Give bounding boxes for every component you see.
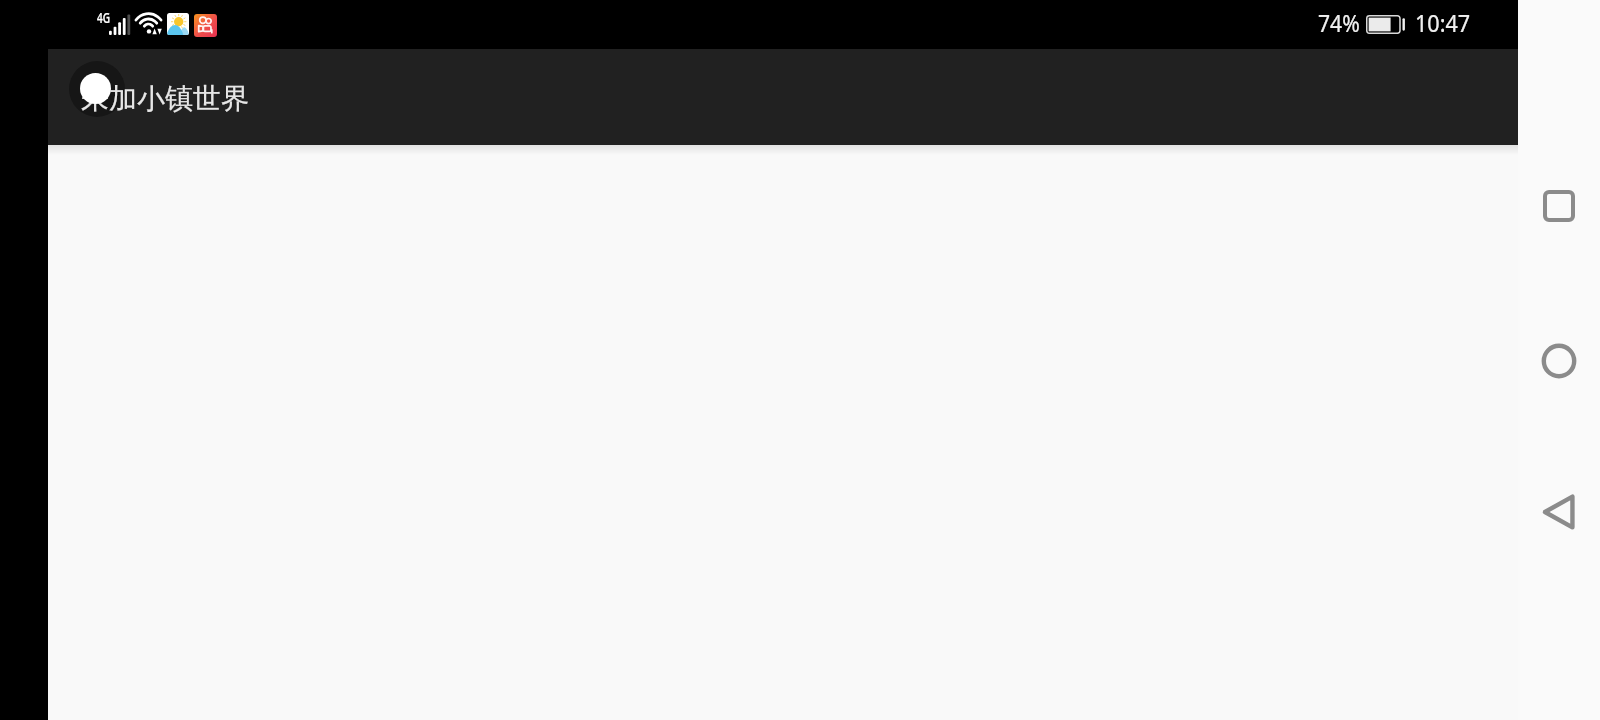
staticText: 74% <box>1318 6 1360 39</box>
staticText: 10:47 <box>1415 6 1471 39</box>
staticText: 来加小镇世界 <box>81 81 249 116</box>
staticText: 4G <box>97 8 111 27</box>
button[interactable]: Back <box>1535 488 1583 536</box>
button[interactable]: Home <box>1535 337 1583 385</box>
button[interactable]: 来加小镇世界 <box>81 75 249 119</box>
button[interactable]: Navigate up <box>69 61 125 117</box>
button[interactable]: Recents <box>1535 182 1583 230</box>
